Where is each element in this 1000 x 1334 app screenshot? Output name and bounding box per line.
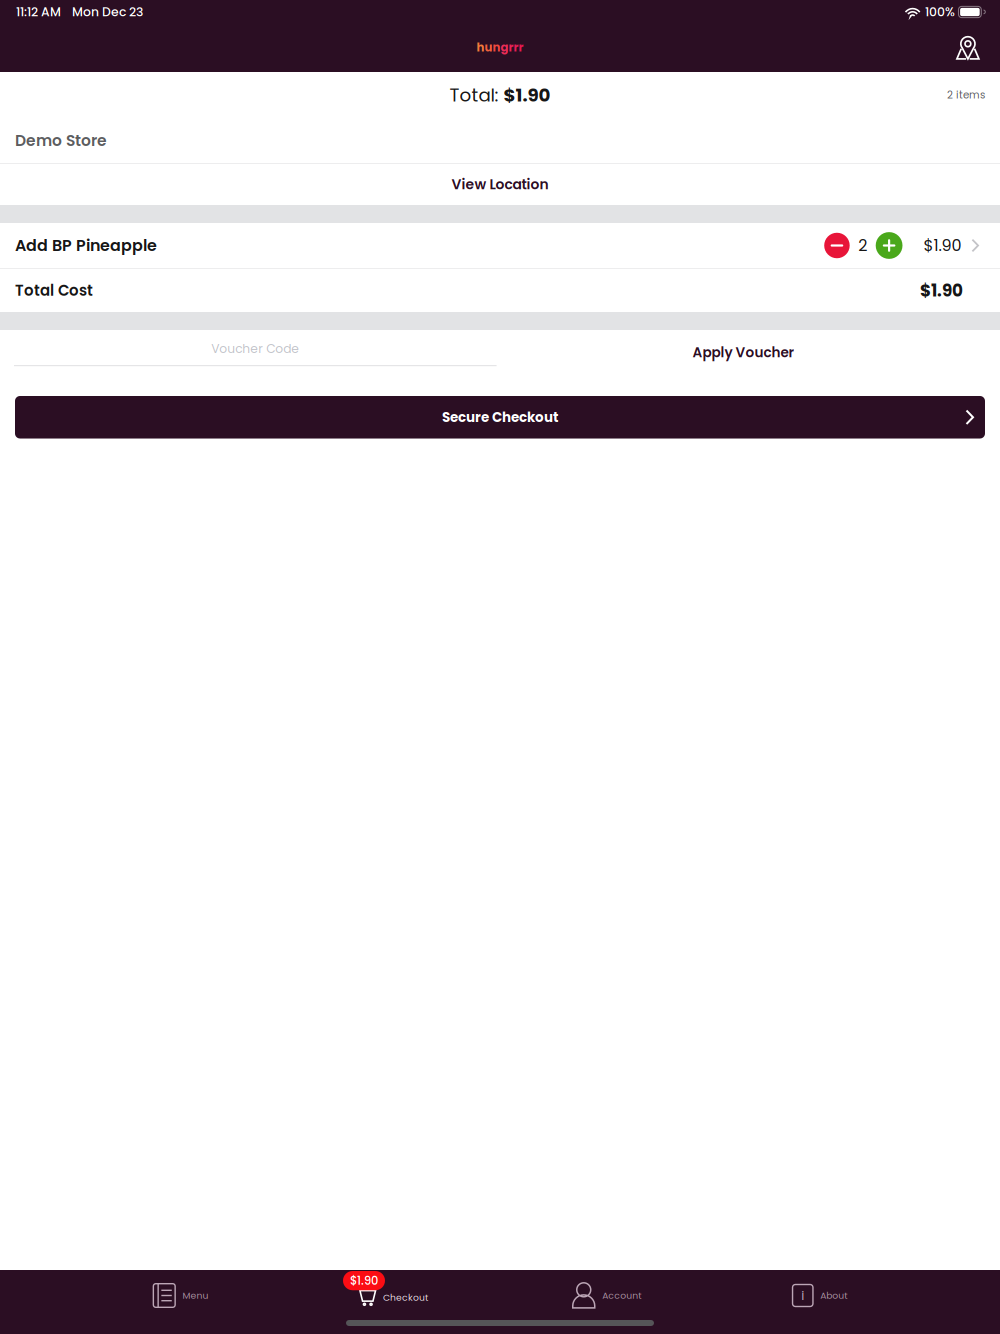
staticText: Apply Voucher: [692, 343, 793, 362]
staticText: 2: [858, 234, 867, 257]
staticText: g: [500, 39, 508, 56]
button[interactable]: Checkout: [287, 1270, 500, 1321]
staticText: $1.90: [923, 234, 961, 257]
staticText: h: [476, 39, 484, 56]
staticText: 100%: [925, 3, 955, 21]
staticText: i: [801, 1287, 804, 1304]
button[interactable]: Store location: [947, 29, 989, 66]
staticText: n: [492, 39, 500, 56]
staticText: Account: [602, 1289, 641, 1302]
staticText: r: [518, 39, 523, 56]
staticText: Total:: [449, 82, 503, 108]
button[interactable]: Account: [500, 1270, 713, 1321]
staticText: u: [484, 39, 492, 56]
staticText: Add BP Pineapple: [15, 234, 157, 257]
staticText: $1.90: [503, 82, 550, 108]
staticText: Voucher Code: [211, 340, 299, 357]
staticText: r: [508, 39, 513, 56]
button[interactable]: Apply Voucher: [678, 335, 807, 370]
staticText: $1.90: [920, 279, 963, 302]
button[interactable]: Menu: [74, 1270, 287, 1321]
staticText: Secure Checkout: [442, 408, 558, 427]
staticText: Mon Dec 23: [72, 3, 143, 21]
button[interactable]: Decrease quantity: [824, 233, 850, 258]
staticText: View Location: [451, 175, 548, 194]
button[interactable]: i: [713, 1270, 926, 1321]
staticText: $1.90: [350, 1273, 378, 1289]
staticText: Demo Store: [15, 130, 107, 151]
staticText: r: [513, 39, 518, 56]
staticText: Menu: [182, 1289, 208, 1302]
button[interactable]: Increase quantity: [876, 232, 902, 259]
staticText: 2 items: [947, 88, 985, 102]
button[interactable]: Secure Checkout: [15, 396, 985, 438]
staticText: Checkout: [383, 1291, 428, 1304]
staticText: 11:12 AM: [16, 3, 61, 21]
button[interactable]: View Location: [0, 164, 1000, 205]
staticText: Total Cost: [15, 280, 93, 301]
staticText: About: [820, 1289, 847, 1302]
